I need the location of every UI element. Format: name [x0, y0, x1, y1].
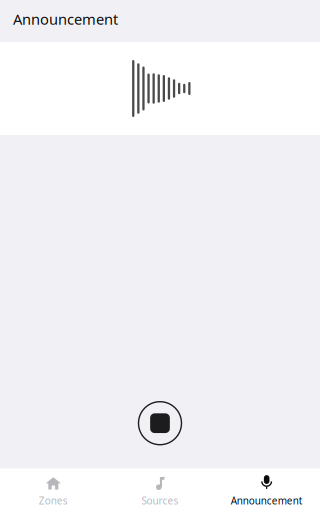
staticText: Zones — [39, 494, 68, 507]
staticText: Announcement — [13, 9, 118, 29]
staticText: Announcement — [231, 494, 303, 507]
button[interactable]: Announcement — [213, 468, 320, 512]
button[interactable]: Zones — [0, 468, 107, 512]
button[interactable]: Stop recording — [132, 395, 188, 451]
staticText: Sources — [141, 494, 178, 507]
button[interactable]: Sources — [107, 468, 213, 512]
